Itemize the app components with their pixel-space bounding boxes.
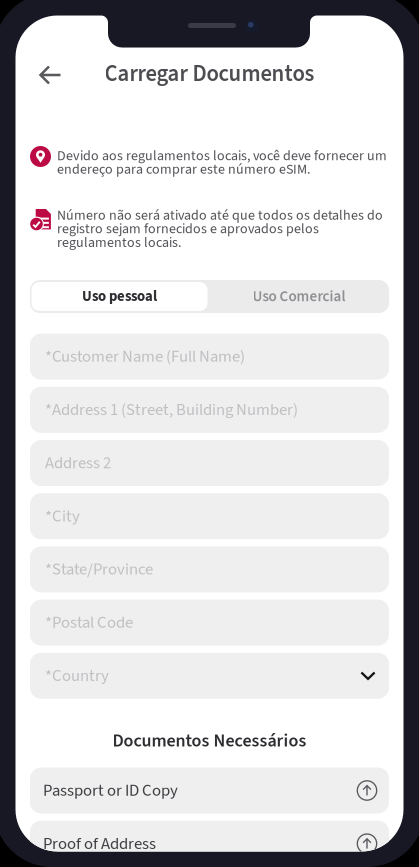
button[interactable]: Uso pessoal xyxy=(30,280,209,313)
staticText: Devido aos regulamentos locais, você dev… xyxy=(57,146,387,179)
button[interactable]: *Country xyxy=(30,653,389,699)
button[interactable]: *Customer Name (Full Name) xyxy=(30,334,389,380)
staticText: Uso Comercial xyxy=(252,286,345,307)
staticText: Documentos Necessários xyxy=(112,728,306,754)
button[interactable]: Back xyxy=(28,55,72,95)
staticText: *Customer Name (Full Name) xyxy=(45,345,245,368)
button[interactable]: Uso Comercial xyxy=(209,280,389,313)
button[interactable]: *City xyxy=(30,493,389,539)
button[interactable]: Passport or ID Copy xyxy=(30,767,389,813)
staticText: *State/Province xyxy=(45,557,153,581)
staticText: Address 2 xyxy=(45,451,111,475)
staticText: Proof of Address xyxy=(43,832,156,855)
staticText: Passport or ID Copy xyxy=(43,779,178,802)
button[interactable]: Address 2 xyxy=(30,440,389,486)
staticText: *Address 1 (Street, Building Number) xyxy=(45,398,298,422)
staticText: *City xyxy=(45,504,80,528)
staticText: *Postal Code xyxy=(45,611,133,634)
button[interactable]: *Address 1 (Street, Building Number) xyxy=(30,387,389,433)
staticText: Uso pessoal xyxy=(82,286,157,307)
button[interactable]: *State/Province xyxy=(30,546,389,592)
staticText: *Country xyxy=(45,664,109,688)
button[interactable]: *Postal Code xyxy=(30,600,389,646)
staticText: Carregar Documentos xyxy=(104,58,314,90)
staticText: Número não será ativado até que todos os… xyxy=(57,205,383,252)
button[interactable]: Proof of Address xyxy=(30,821,389,867)
